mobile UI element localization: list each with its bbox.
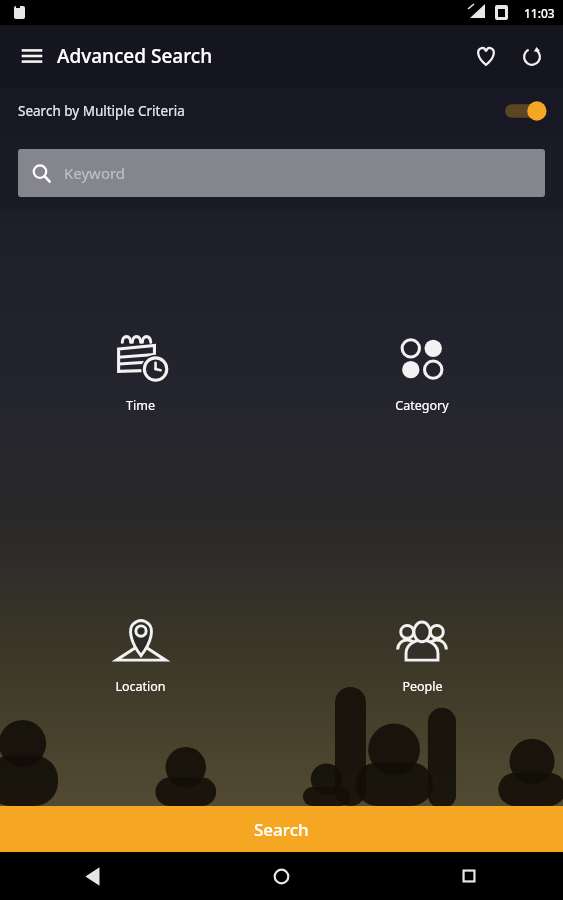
staticText: Search by Multiple Criteria xyxy=(18,102,185,120)
button[interactable]: Location xyxy=(0,606,281,701)
button[interactable]: Recent apps xyxy=(375,852,563,900)
button[interactable]: Back xyxy=(0,852,187,900)
staticText: Advanced Search xyxy=(57,43,213,69)
button[interactable]: Home xyxy=(187,852,375,900)
button[interactable]: Favorites xyxy=(463,33,509,79)
staticText: 11:03 xyxy=(524,5,555,21)
staticText: Search xyxy=(254,818,309,841)
button[interactable]: Search xyxy=(0,806,563,852)
staticText: Keyword xyxy=(64,163,126,183)
button[interactable]: Search by Multiple Criteria xyxy=(0,87,563,135)
staticText: Time xyxy=(126,397,155,414)
staticText: People xyxy=(402,678,443,695)
button[interactable]: Menu xyxy=(10,34,54,78)
button[interactable]: Keyword xyxy=(18,149,545,197)
staticText: Location xyxy=(115,678,166,695)
button[interactable]: People xyxy=(281,606,563,701)
staticText: Category xyxy=(395,397,449,414)
button[interactable]: Refresh xyxy=(509,33,555,79)
button[interactable]: Category xyxy=(281,325,563,420)
button[interactable]: Time xyxy=(0,325,281,420)
